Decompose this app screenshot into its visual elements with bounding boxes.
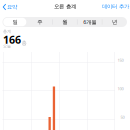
button[interactable]: 데이터 추가 [93, 0, 129, 13]
button[interactable]: 일 [2, 17, 27, 27]
staticText: 일 [12, 19, 17, 25]
staticText: 50 [120, 114, 124, 120]
staticText: 층 [22, 40, 27, 46]
staticText: 년 [112, 19, 117, 25]
staticText: 데이터 추가 [102, 3, 129, 10]
staticText: 오른 층계 [54, 3, 76, 10]
button[interactable]: 월 [52, 17, 77, 27]
staticText: 6개월 [83, 18, 96, 26]
staticText: 월 [62, 19, 67, 25]
button[interactable]: 주 [27, 17, 52, 27]
staticText: 요약 [7, 4, 17, 10]
staticText: 오늘 [3, 44, 11, 49]
button[interactable]: 년 [102, 17, 127, 27]
staticText: 166 [3, 33, 21, 47]
staticText: 총계 [3, 29, 11, 34]
button[interactable]: 6개월 [77, 17, 102, 27]
staticText: 주 [37, 19, 42, 25]
button[interactable]: 요약 [0, 0, 26, 13]
staticText: 150 [117, 57, 123, 63]
staticText: 100 [117, 86, 123, 91]
